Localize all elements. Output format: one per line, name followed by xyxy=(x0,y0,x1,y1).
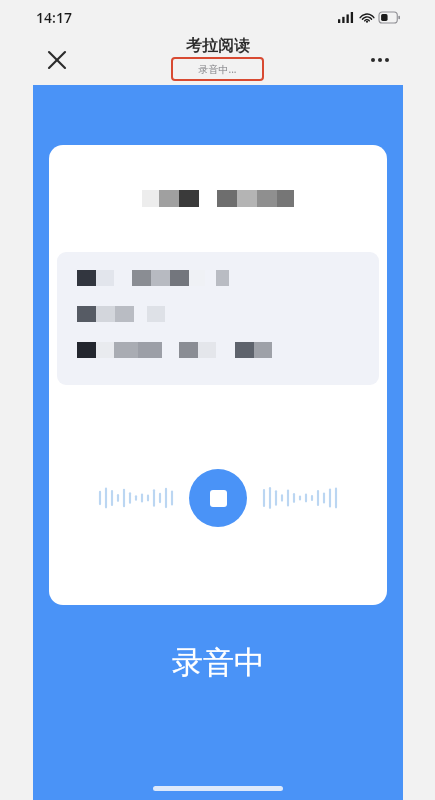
staticText: 录音中 xyxy=(172,643,265,682)
button[interactable]: Stop recording xyxy=(49,145,387,605)
button[interactable]: Stop recording xyxy=(189,469,247,527)
staticText: 考拉阅读 xyxy=(186,36,250,56)
staticText: 14:17 xyxy=(36,8,72,27)
button[interactable]: Close xyxy=(44,47,70,73)
button[interactable]: More options xyxy=(365,45,395,75)
staticText: 录音中... xyxy=(198,62,237,76)
